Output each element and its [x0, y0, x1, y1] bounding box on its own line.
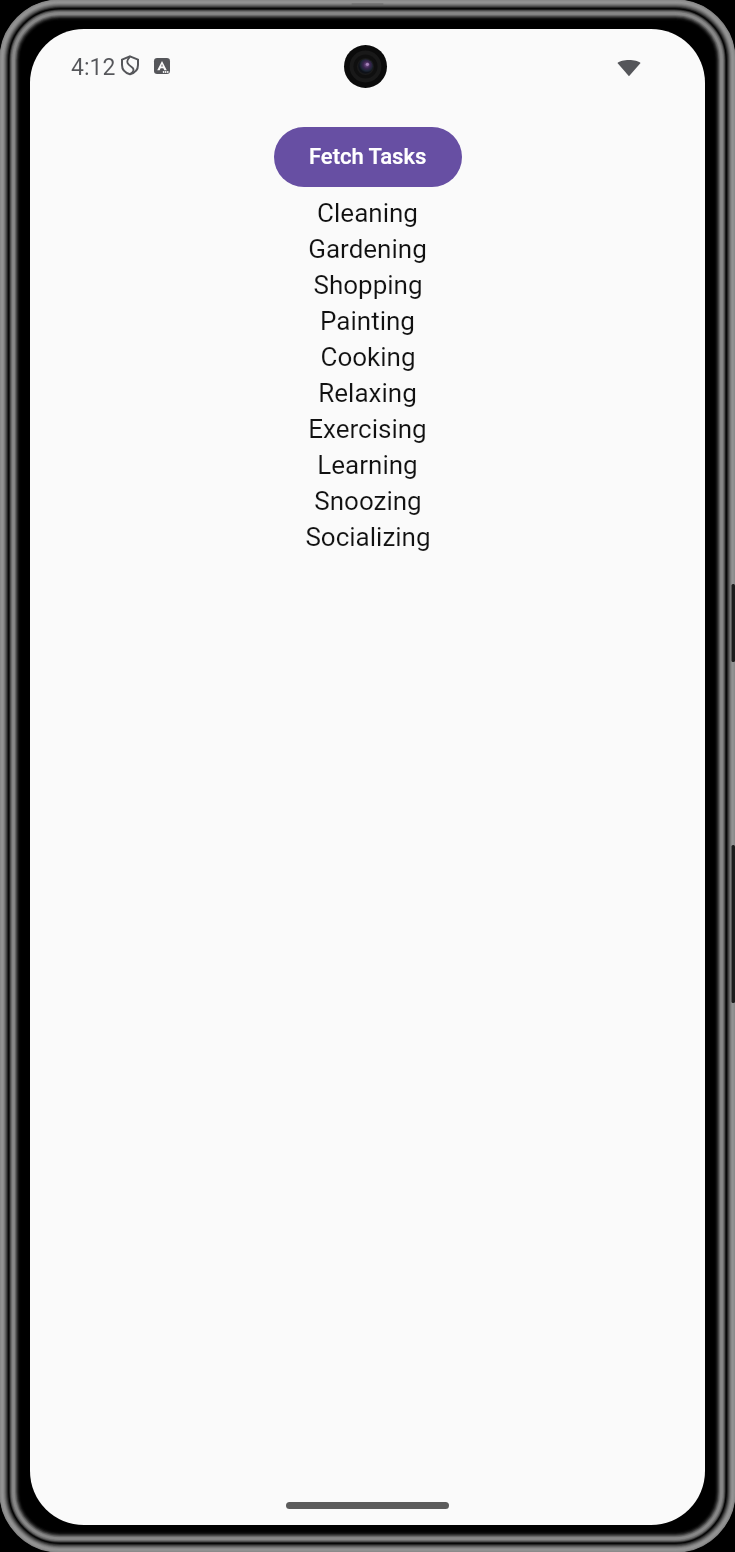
button[interactable]: Cleaning	[317, 195, 418, 231]
button[interactable]: Exercising	[308, 411, 427, 447]
button[interactable]: Shopping	[313, 267, 423, 303]
button[interactable]: Cooking	[320, 339, 416, 375]
button[interactable]: Fetch Tasks	[274, 127, 462, 187]
staticText: Fetch Tasks	[309, 144, 427, 170]
staticText: Snoozing	[314, 486, 422, 516]
staticText: Learning	[317, 450, 418, 480]
button[interactable]: Snoozing	[314, 483, 422, 519]
button[interactable]: Gardening	[308, 231, 427, 267]
staticText: Cleaning	[317, 198, 418, 228]
staticText: Socializing	[305, 522, 431, 552]
other: VPN active	[120, 55, 140, 75]
staticText: Painting	[320, 306, 415, 336]
staticText: Cooking	[320, 342, 416, 372]
staticText: Shopping	[313, 270, 423, 300]
button[interactable]: Socializing	[305, 519, 431, 555]
staticText: 4:12	[71, 54, 116, 81]
other: Accessibility	[154, 58, 170, 74]
button[interactable]: Learning	[317, 447, 418, 483]
button[interactable]: Relaxing	[318, 375, 417, 411]
other: Wi-Fi signal	[616, 55, 642, 81]
staticText: Relaxing	[318, 378, 417, 408]
button[interactable]: Painting	[320, 303, 415, 339]
staticText: Gardening	[308, 234, 427, 264]
staticText: Exercising	[308, 414, 427, 444]
